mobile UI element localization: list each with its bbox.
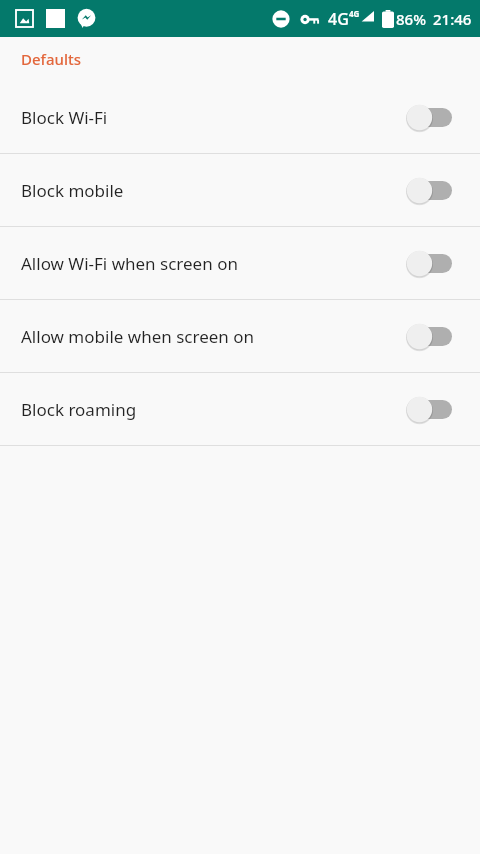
staticText: Block Wi-Fi xyxy=(21,106,406,129)
button[interactable]: Allow mobile when screen on xyxy=(0,300,480,372)
staticText: Allow mobile when screen on xyxy=(21,325,406,348)
staticText: 4G xyxy=(328,8,349,30)
staticText: 86% xyxy=(396,9,426,29)
staticText: Block roaming xyxy=(21,398,406,421)
staticText: Defaults xyxy=(21,49,82,69)
button[interactable]: Block mobile xyxy=(0,154,480,226)
staticText: Block mobile xyxy=(21,179,406,202)
staticText: 21:46 xyxy=(433,9,472,29)
button[interactable]: Block roaming xyxy=(0,373,480,445)
button[interactable]: Block Wi-Fi xyxy=(0,81,480,153)
staticText: 4G xyxy=(349,8,360,19)
staticText: Allow Wi-Fi when screen on xyxy=(21,252,406,275)
button[interactable]: Allow Wi-Fi when screen on xyxy=(0,227,480,299)
